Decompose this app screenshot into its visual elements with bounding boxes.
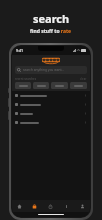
button[interactable]: clear <box>80 77 87 81</box>
button[interactable]: Activity <box>58 200 74 212</box>
button[interactable]: Saved <box>42 200 58 212</box>
staticText: find stuff to rate <box>30 28 72 35</box>
button[interactable]: filter chip <box>15 82 31 89</box>
button[interactable]: search anything you want... <box>15 66 87 74</box>
button[interactable]: Home <box>12 200 27 212</box>
button[interactable]: filter chip <box>70 82 87 89</box>
button[interactable]: search result <box>12 118 90 127</box>
button[interactable]: filter chip <box>51 82 68 89</box>
staticText: 9:41 <box>16 48 23 53</box>
button[interactable]: Search <box>27 200 42 212</box>
button[interactable]: filter chip <box>33 82 49 89</box>
button[interactable]: search result <box>12 109 90 118</box>
staticText: recent searches <box>15 77 37 81</box>
staticText: search anything you want... <box>23 68 65 72</box>
staticText: search <box>33 11 70 26</box>
button[interactable]: Profile <box>74 200 90 212</box>
button[interactable]: search result <box>12 100 90 109</box>
button[interactable]: search result <box>12 91 90 100</box>
